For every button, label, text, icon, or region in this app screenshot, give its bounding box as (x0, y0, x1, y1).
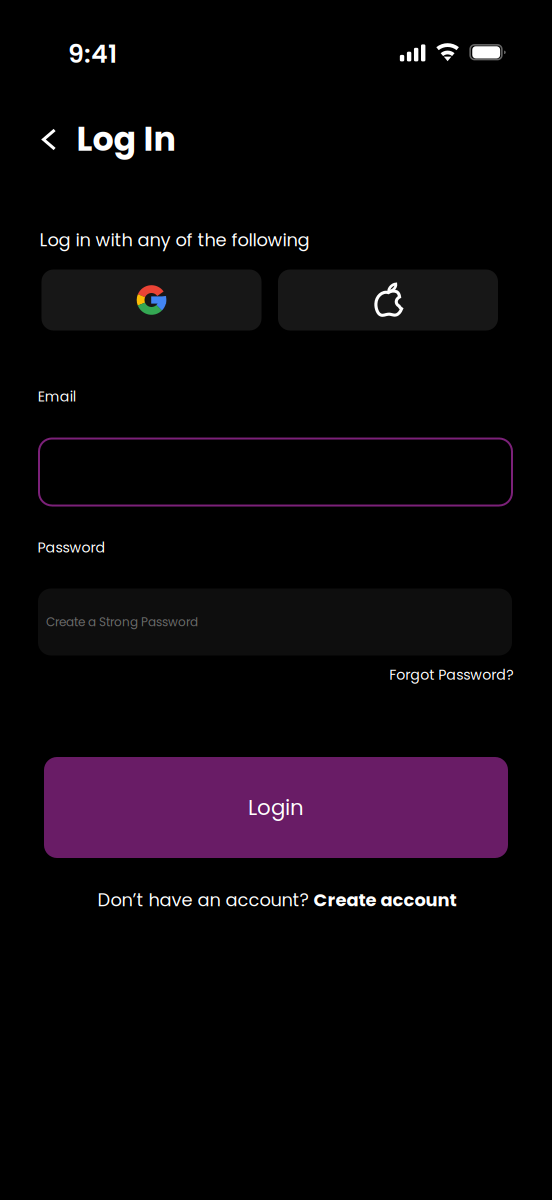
staticText: Password (37, 538, 105, 557)
button[interactable]: Continue with Apple (278, 269, 498, 330)
staticText: Forgot Password? (389, 665, 513, 685)
staticText: Login (248, 793, 304, 822)
staticText: Don’t have an account? (98, 887, 314, 912)
staticText: Create a Strong Password (46, 614, 198, 630)
button[interactable]: Continue with Google (41, 269, 261, 330)
button[interactable]: Back (28, 116, 70, 162)
staticText: 9:41 (68, 36, 117, 72)
button[interactable]: Forgot Password? (385, 659, 517, 691)
staticText: Log In (76, 116, 175, 162)
button[interactable]: Create account (314, 887, 457, 912)
staticText: Create account (314, 887, 457, 912)
button[interactable]: Password field (38, 588, 512, 655)
button[interactable]: Email field (39, 438, 512, 505)
staticText: Log in with any of the following (39, 227, 309, 252)
staticText: Email (38, 387, 76, 406)
button[interactable]: Login (44, 757, 508, 858)
